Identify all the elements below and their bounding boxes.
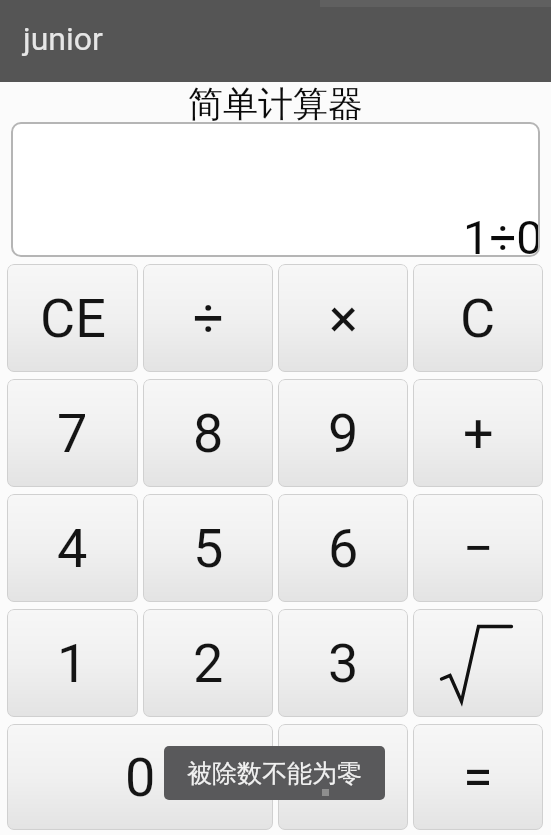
staticText: 5 (193, 517, 224, 580)
button[interactable]: CE (7, 264, 138, 372)
button[interactable]: ÷ (143, 264, 273, 372)
staticText: 被除数不能为零 (187, 758, 362, 789)
button[interactable]: × (278, 264, 408, 372)
button[interactable]: 3 (278, 609, 408, 717)
staticText: + (463, 402, 494, 465)
button[interactable] (278, 724, 408, 830)
staticText: − (463, 517, 494, 580)
staticText: CE (40, 287, 106, 350)
staticText: = (463, 746, 493, 809)
staticText: 8 (193, 402, 224, 465)
button[interactable]: 9 (278, 379, 408, 487)
staticText: 3 (328, 632, 359, 695)
button[interactable]: C (413, 264, 543, 372)
button[interactable]: 4 (7, 494, 138, 602)
staticText: 2 (193, 632, 224, 695)
button[interactable]: 1 (7, 609, 138, 717)
staticText: 4 (57, 517, 88, 580)
staticText: C (460, 287, 496, 350)
staticText: 简单计算器 (188, 82, 363, 122)
button[interactable]: 8 (143, 379, 273, 487)
button[interactable]: 7 (7, 379, 138, 487)
button[interactable] (413, 609, 543, 717)
staticText: 7 (57, 402, 88, 465)
staticText: 1÷0 (463, 210, 543, 265)
staticText: junior (23, 20, 103, 58)
button[interactable]: 5 (143, 494, 273, 602)
staticText: 9 (328, 402, 359, 465)
staticText: 6 (328, 517, 359, 580)
button[interactable]: 0 (7, 724, 273, 830)
button[interactable]: + (413, 379, 543, 487)
staticText: 0 (125, 746, 156, 809)
staticText: 1 (57, 632, 88, 695)
button[interactable]: = (413, 724, 543, 830)
button[interactable]: − (413, 494, 543, 602)
button[interactable]: 2 (143, 609, 273, 717)
staticText: × (329, 287, 358, 350)
staticText: ÷ (193, 287, 224, 350)
button[interactable]: 1÷0 (11, 122, 540, 257)
button[interactable]: 6 (278, 494, 408, 602)
